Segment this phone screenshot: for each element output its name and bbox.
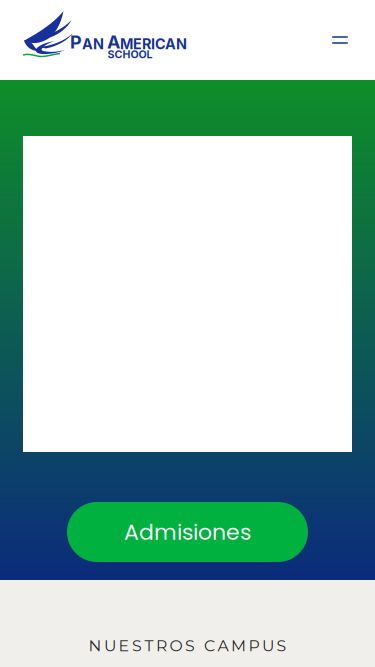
button[interactable]: Admisiones bbox=[67, 502, 308, 562]
staticText: P bbox=[70, 31, 82, 53]
staticText: SCHOOL bbox=[107, 48, 152, 61]
staticText: MERICAN bbox=[120, 35, 187, 53]
staticText: A bbox=[107, 31, 120, 53]
staticText: AN bbox=[82, 35, 107, 53]
staticText: Admisiones bbox=[124, 517, 251, 547]
button[interactable]: P bbox=[0, 0, 204, 70]
staticText: NUESTROS CAMPUS bbox=[88, 636, 286, 655]
button[interactable]: Menu bbox=[318, 18, 362, 62]
